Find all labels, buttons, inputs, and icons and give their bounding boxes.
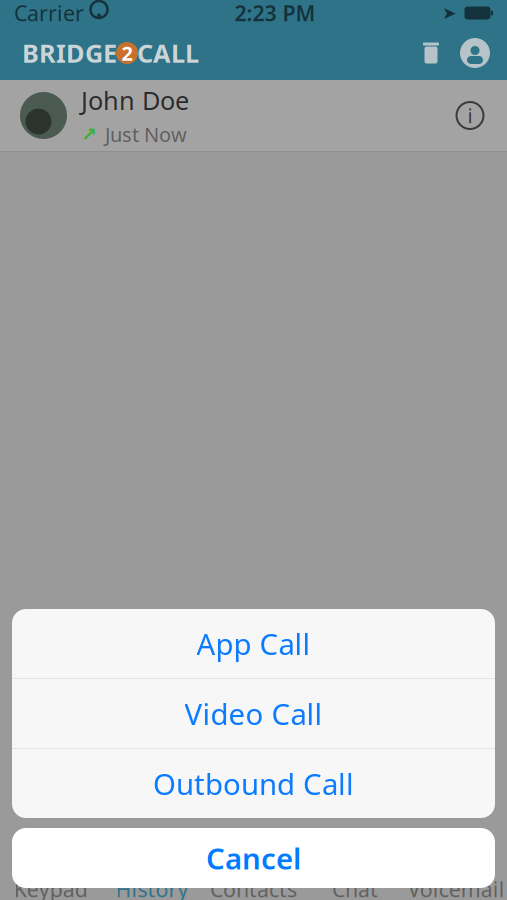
button[interactable]: John Doe (0, 80, 507, 152)
staticText: 2 (121, 40, 132, 66)
staticText: 2:23 PM (234, 0, 315, 27)
staticText: Carrier (14, 0, 84, 27)
staticText: Cancel (206, 838, 301, 877)
staticText: Voicemail (408, 875, 505, 900)
staticText: i (467, 102, 472, 129)
staticText: ➤ (442, 3, 457, 23)
staticText: Keypad (14, 875, 88, 900)
button[interactable]: Chat (304, 870, 406, 900)
staticText: BRIDGE (22, 36, 117, 70)
button[interactable]: Keypad (0, 870, 101, 900)
button[interactable]: Contacts (203, 870, 304, 900)
button[interactable]: Account (453, 31, 497, 75)
staticText: App Call (196, 624, 310, 663)
button[interactable]: Outbound Call (12, 749, 495, 818)
staticText: Just Now (105, 121, 187, 148)
staticText: CALL (137, 36, 199, 70)
staticText: Chat (332, 875, 378, 900)
button[interactable]: Voicemail (406, 870, 507, 900)
staticText: Contacts (210, 875, 297, 900)
button[interactable]: Cancel (12, 828, 495, 888)
button[interactable]: History (101, 870, 203, 900)
staticText: John Doe (81, 83, 189, 117)
button[interactable]: Delete (409, 31, 453, 75)
staticText: History (116, 875, 189, 900)
staticText: Outbound Call (153, 764, 354, 803)
button[interactable]: Video Call (12, 679, 495, 748)
staticText: ↗ (81, 124, 97, 145)
button[interactable]: App Call (12, 609, 495, 678)
staticText: Video Call (184, 694, 322, 733)
